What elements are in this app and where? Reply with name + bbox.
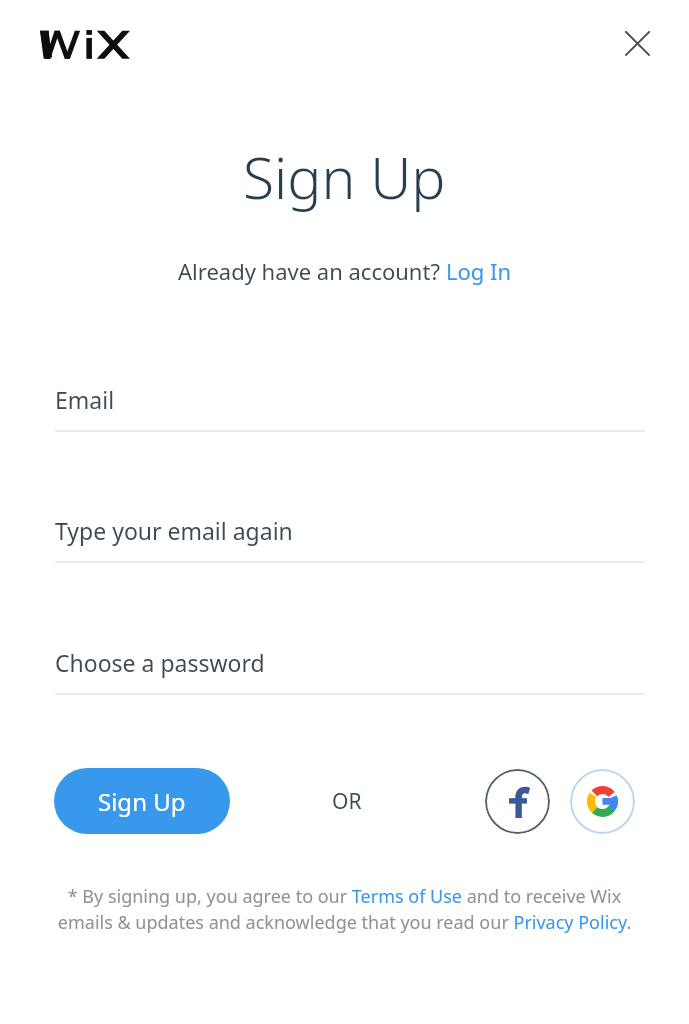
staticText: Type your email again	[55, 515, 293, 546]
button[interactable]: Choose a password	[55, 647, 645, 695]
button[interactable]: Log In	[446, 256, 512, 286]
staticText: OR	[332, 787, 362, 816]
button[interactable]: Sign Up	[54, 768, 230, 834]
button[interactable]: Close	[611, 17, 663, 69]
staticText: Log In	[446, 256, 512, 286]
button[interactable]: Sign up with Facebook	[485, 769, 550, 834]
staticText: Choose a password	[55, 647, 265, 678]
staticText: Sign Up	[243, 138, 446, 216]
button[interactable]: Type your email again	[55, 515, 645, 563]
button[interactable]: Email	[55, 384, 645, 432]
staticText: Sign Up	[98, 785, 186, 818]
staticText: Already have an account?	[178, 256, 446, 286]
button[interactable]: Sign up with Google	[570, 769, 635, 834]
button[interactable]: Wix home	[40, 20, 140, 66]
staticText: * By signing up, you agree to our Terms …	[52, 884, 637, 935]
staticText: Email	[55, 384, 115, 415]
